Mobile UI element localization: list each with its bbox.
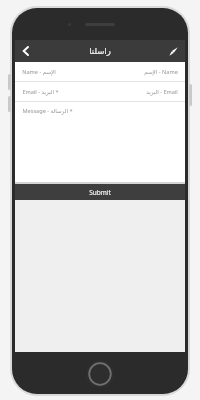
button[interactable]: Submit [15,184,185,200]
button[interactable]: Name - الإسم [15,62,185,81]
button[interactable]: Message - الرسالة * [15,102,185,182]
staticText: Name - الإسم [22,68,56,76]
staticText: البريد - Email [146,88,178,96]
button[interactable]: Send [161,40,185,62]
staticText: Message - الرسالة * [22,107,73,115]
button[interactable]: Back [15,40,37,62]
staticText: Submit [89,188,111,197]
staticText: راسلنا [89,46,111,56]
staticText: الإسم - Name [144,68,178,76]
button[interactable]: Email - البريد * [15,82,185,101]
staticText: Email - البريد * [22,88,59,96]
button[interactable]: Home [86,360,114,388]
